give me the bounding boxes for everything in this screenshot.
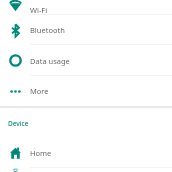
staticText: More: [30, 86, 49, 96]
button[interactable]: Data usage: [0, 45, 172, 76]
staticText: Wi-Fi: [30, 5, 48, 15]
other: Data usage: [0, 45, 30, 76]
button[interactable]: Wi-Fi: [0, 0, 172, 15]
button[interactable]: More: [0, 76, 172, 106]
button[interactable]: Bluetooth: [0, 15, 172, 45]
staticText: Device: [8, 119, 29, 128]
button[interactable]: Home: [0, 138, 172, 168]
other: Home: [0, 138, 30, 168]
other: Display: [0, 168, 30, 172]
button[interactable]: Display: [0, 168, 172, 172]
other: Wi-Fi: [0, 0, 30, 15]
other: Bluetooth: [0, 15, 30, 45]
staticText: Bluetooth: [30, 25, 65, 35]
staticText: Data usage: [30, 56, 70, 66]
other: More: [0, 76, 30, 106]
staticText: Home: [30, 148, 52, 158]
